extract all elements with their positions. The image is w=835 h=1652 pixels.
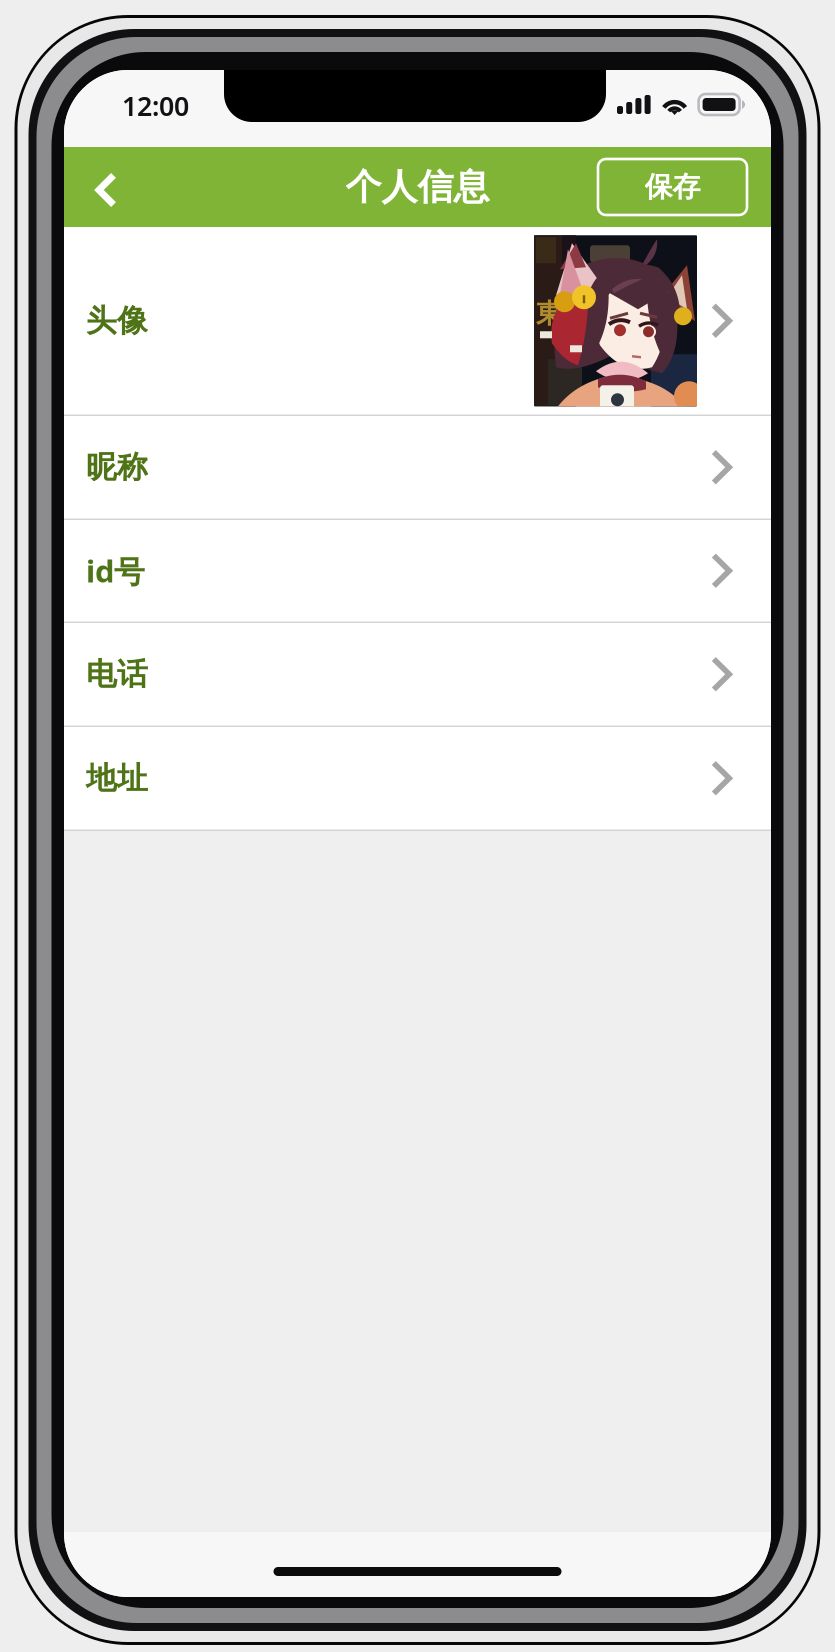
button[interactable]: Back	[64, 147, 148, 227]
staticText: id号	[86, 550, 145, 591]
button[interactable]: 电话	[64, 623, 771, 727]
staticText: 12:00	[122, 88, 189, 123]
staticText: 个人信息	[345, 165, 489, 209]
staticText: 東	[536, 297, 563, 330]
staticText: 地址	[86, 759, 148, 797]
button[interactable]: 头像	[64, 227, 771, 416]
button[interactable]: id号	[64, 520, 771, 623]
staticText: 保存	[644, 170, 700, 204]
staticText: 昵称	[86, 448, 148, 486]
staticText: 电话	[86, 655, 148, 693]
button[interactable]: 昵称	[64, 416, 771, 520]
staticText: 头像	[86, 302, 148, 340]
button[interactable]: 地址	[64, 727, 771, 831]
button[interactable]: 保存	[598, 159, 747, 215]
